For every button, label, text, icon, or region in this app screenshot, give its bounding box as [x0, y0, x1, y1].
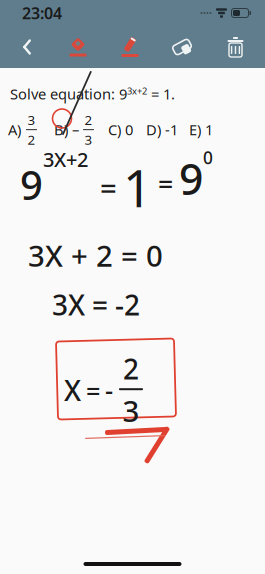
- staticText: Solve equation: 9: [10, 84, 127, 103]
- staticText: 3X = -2: [52, 286, 140, 323]
- button[interactable]: Delete: [208, 26, 263, 68]
- staticText: 3: [84, 131, 92, 148]
- button[interactable]: Back: [2, 26, 52, 68]
- staticText: 9: [179, 150, 203, 207]
- button[interactable]: Marker: [104, 26, 156, 68]
- staticText: 3X+2: [43, 146, 88, 173]
- staticText: E) 1: [189, 120, 213, 139]
- button[interactable]: Eraser: [156, 26, 208, 68]
- staticText: 2: [123, 350, 139, 387]
- button[interactable]: Pen: [52, 26, 104, 68]
- staticText: =: [86, 373, 100, 407]
- staticText: 0: [203, 146, 213, 169]
- staticText: X: [64, 371, 81, 409]
- staticText: 1: [123, 154, 152, 221]
- staticText: -: [105, 373, 113, 407]
- staticText: =: [158, 166, 173, 201]
- staticText: C) 0: [108, 120, 133, 139]
- staticText: 3: [122, 391, 139, 430]
- staticText: 2: [84, 111, 92, 129]
- staticText: B): [54, 120, 68, 139]
- staticText: = 1.: [147, 84, 175, 103]
- staticText: 3X + 2 = 0: [28, 236, 163, 275]
- staticText: =: [100, 168, 117, 207]
- staticText: 2: [27, 131, 35, 148]
- staticText: 3: [27, 111, 35, 129]
- staticText: 3x+2: [127, 85, 147, 97]
- staticText: –: [72, 120, 79, 139]
- staticText: 23:04: [22, 2, 62, 24]
- staticText: A): [8, 120, 21, 139]
- staticText: D) -1: [146, 120, 178, 139]
- staticText: 9: [20, 158, 43, 211]
